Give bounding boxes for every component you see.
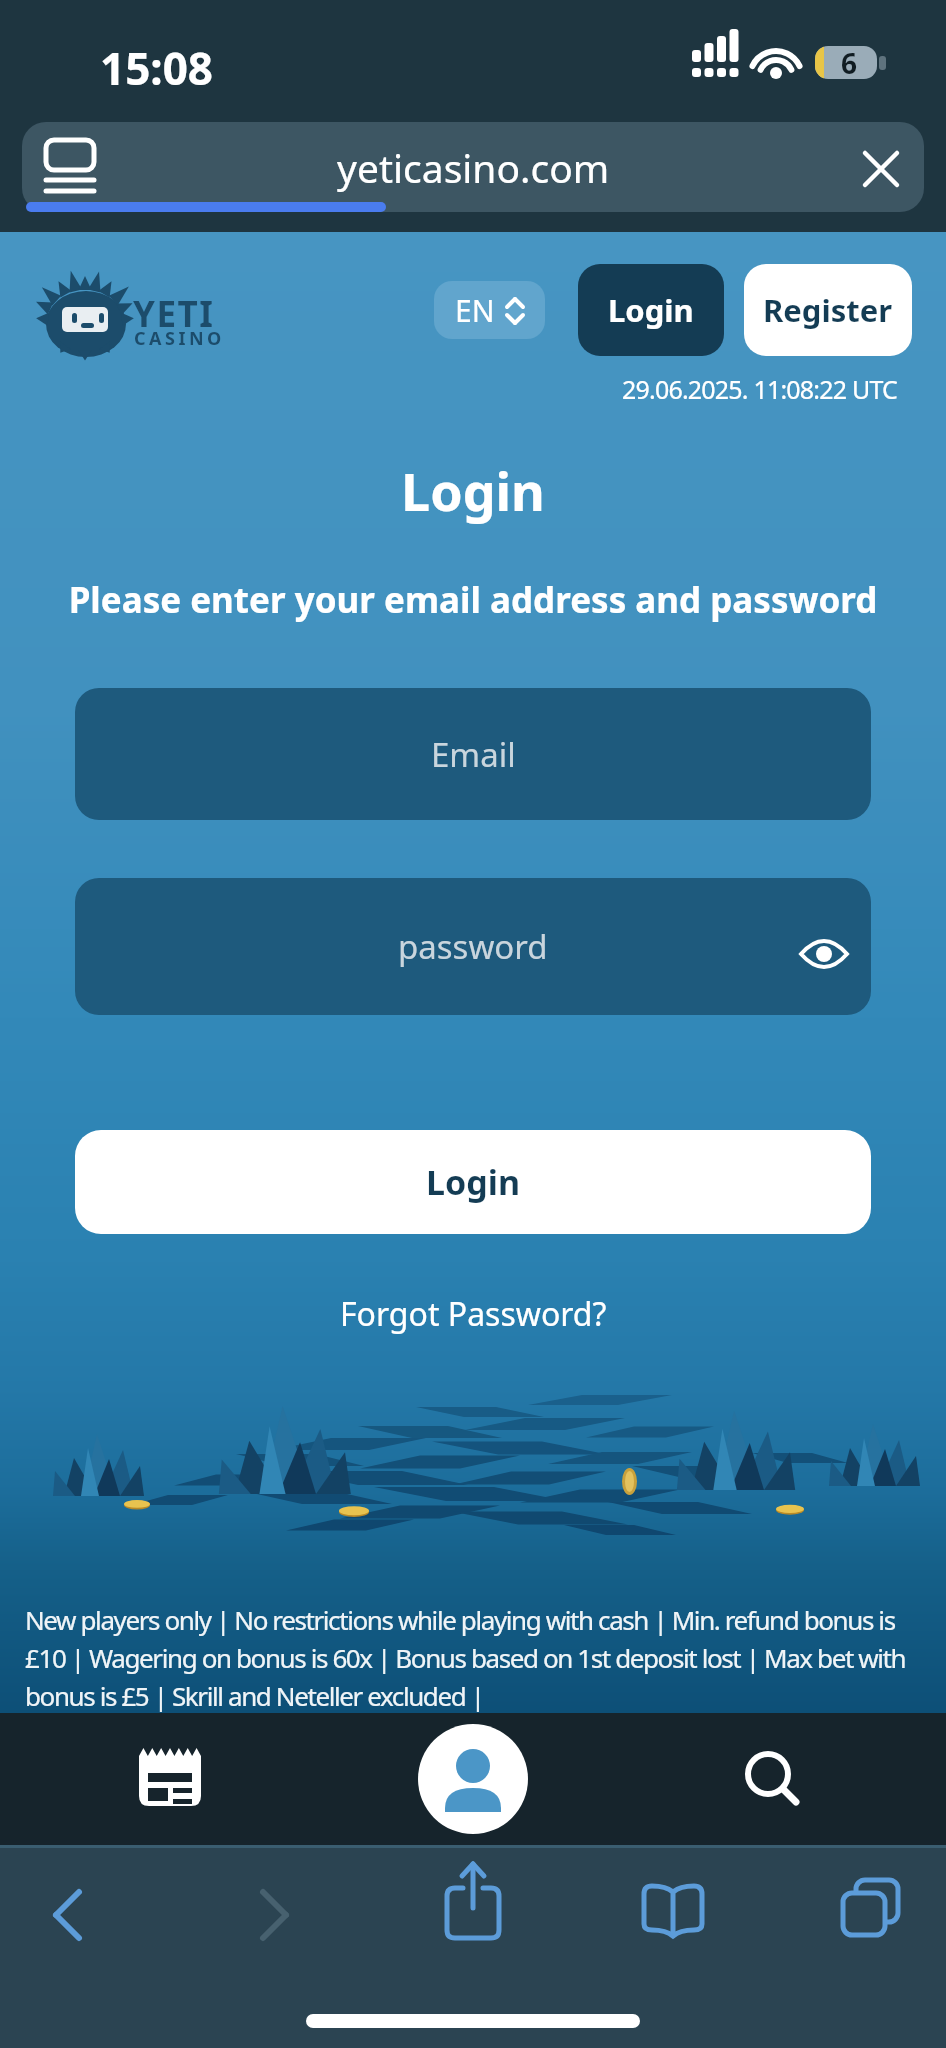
staticText: New players only | No restrictions while… (25, 1602, 895, 1637)
button[interactable]: Register (744, 264, 912, 356)
staticText: 6 (841, 44, 858, 80)
staticText: Register (763, 289, 893, 331)
button[interactable] (418, 1724, 528, 1834)
button[interactable]: EN (434, 281, 545, 339)
button[interactable]: Email (75, 688, 871, 820)
button[interactable] (628, 1866, 718, 1956)
button[interactable] (228, 1870, 318, 1960)
button[interactable]: Login (578, 264, 724, 356)
button[interactable] (110, 1730, 230, 1830)
staticText: 15:08 (100, 38, 214, 98)
button[interactable] (860, 148, 902, 190)
staticText: Login (426, 1159, 521, 1205)
staticText: Email (431, 732, 516, 777)
button[interactable]: password (75, 878, 871, 1015)
button[interactable]: yeticasino.com (22, 122, 924, 212)
staticText: password (398, 924, 548, 969)
button[interactable]: YETI (44, 282, 224, 358)
staticText: YETI (133, 290, 215, 338)
staticText: CASINO (134, 326, 225, 351)
button[interactable] (715, 1730, 835, 1830)
staticText: EN (455, 290, 495, 331)
staticText: Please enter your email address and pass… (0, 576, 946, 624)
button[interactable] (826, 1866, 916, 1956)
staticText: Forgot Password? (340, 1292, 607, 1336)
staticText: bonus is £5 | Skrill and Neteller exclud… (25, 1678, 484, 1713)
button[interactable] (799, 936, 849, 972)
staticText: Login (608, 289, 694, 331)
button[interactable]: Forgot Password? (340, 1292, 607, 1336)
button[interactable] (24, 1870, 114, 1960)
button[interactable] (428, 1856, 518, 1952)
staticText: 29.06.2025. 11:08:22 UTC (0, 372, 897, 406)
staticText: Login (0, 455, 946, 526)
button[interactable]: Login (75, 1130, 871, 1234)
staticText: yeticasino.com (337, 141, 610, 194)
staticText: £10 | Wagering on bonus is 60x | Bonus b… (25, 1640, 906, 1675)
